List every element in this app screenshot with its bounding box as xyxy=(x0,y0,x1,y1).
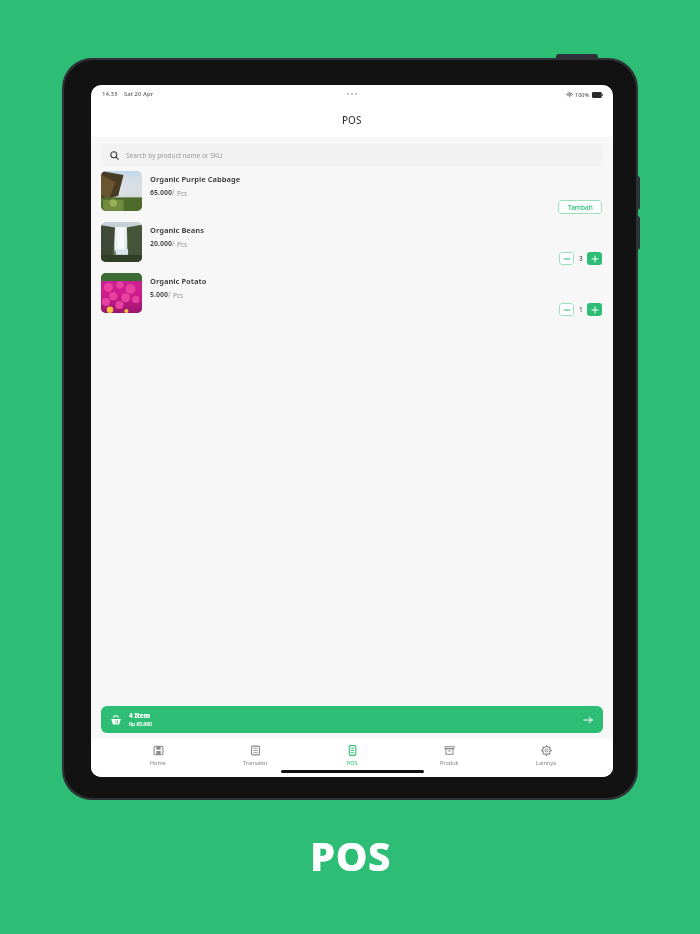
staticText: Pcs xyxy=(173,291,184,300)
staticText: 100% xyxy=(575,91,590,98)
button[interactable]: 4 Item xyxy=(101,706,603,733)
staticText: 65.000 xyxy=(150,188,172,198)
staticText: POS xyxy=(347,759,358,766)
staticText: POS xyxy=(310,828,391,882)
button[interactable]: Lainnya xyxy=(516,744,576,767)
staticText: Sat 20 Apr xyxy=(124,90,154,98)
staticText: Pcs xyxy=(177,240,188,249)
staticText: POS xyxy=(342,113,362,127)
staticText: / xyxy=(172,188,177,198)
staticText: Search by product name or SKU xyxy=(126,151,223,160)
button[interactable]: Home xyxy=(128,744,188,767)
button[interactable]: Tambah xyxy=(558,200,602,214)
button[interactable]: Organic Beans xyxy=(91,217,613,268)
staticText: Organic Potato xyxy=(150,276,207,286)
button[interactable]: Organic Purple Cabbage xyxy=(91,166,613,217)
button[interactable]: Transaksi xyxy=(225,744,285,767)
staticText: 3 xyxy=(579,254,583,263)
other: Continue xyxy=(582,714,594,726)
staticText: / xyxy=(168,290,173,300)
button[interactable]: Produk xyxy=(419,744,479,767)
staticText: Tambah xyxy=(568,203,593,212)
staticText: Organic Purple Cabbage xyxy=(150,174,241,184)
staticText: 5.000 xyxy=(150,290,168,300)
button[interactable]: POS xyxy=(322,744,382,767)
staticText: 1 xyxy=(579,305,583,314)
staticText: Produk xyxy=(440,759,459,766)
staticText: Transaksi xyxy=(243,759,268,766)
staticText: Organic Beans xyxy=(150,225,204,235)
staticText: 20.000 xyxy=(150,239,172,249)
button[interactable]: Decrease quantity xyxy=(559,303,574,316)
button[interactable]: Increase quantity xyxy=(587,303,602,316)
staticText: / xyxy=(172,239,177,249)
staticText: Rp 65.000 xyxy=(129,721,153,728)
button[interactable]: Increase quantity xyxy=(587,252,602,265)
button[interactable]: Search by product name or SKU xyxy=(101,144,603,166)
staticText: 4 Item xyxy=(129,711,150,720)
staticText: Lainnya xyxy=(536,759,557,766)
staticText: 14.33 xyxy=(102,90,118,98)
staticText: Home xyxy=(150,759,166,766)
button[interactable]: Organic Potato xyxy=(91,268,613,319)
staticText: Pcs xyxy=(177,189,188,198)
button[interactable]: Decrease quantity xyxy=(559,252,574,265)
